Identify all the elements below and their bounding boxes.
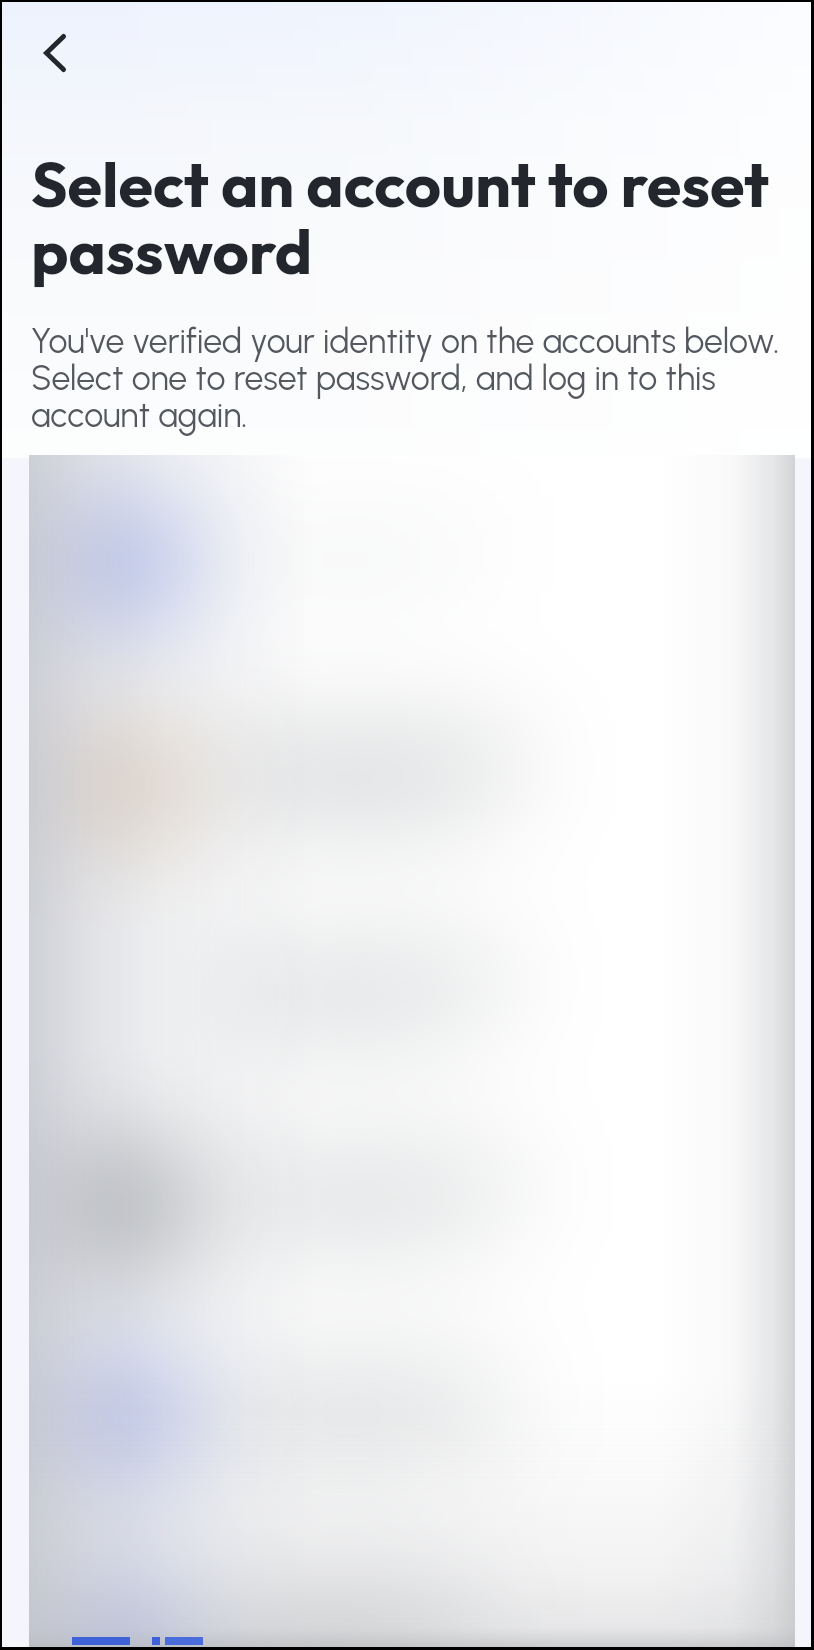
- button[interactable]: [29, 895, 795, 1107]
- staticText: You've verified your identity on the acc…: [31, 321, 791, 436]
- button[interactable]: [29, 680, 795, 892]
- button[interactable]: Back: [29, 27, 81, 79]
- button[interactable]: [29, 1525, 795, 1647]
- button[interactable]: [29, 457, 795, 669]
- button[interactable]: [29, 1100, 795, 1312]
- staticText: Select an account to reset password: [31, 144, 791, 291]
- button[interactable]: [29, 1313, 795, 1525]
